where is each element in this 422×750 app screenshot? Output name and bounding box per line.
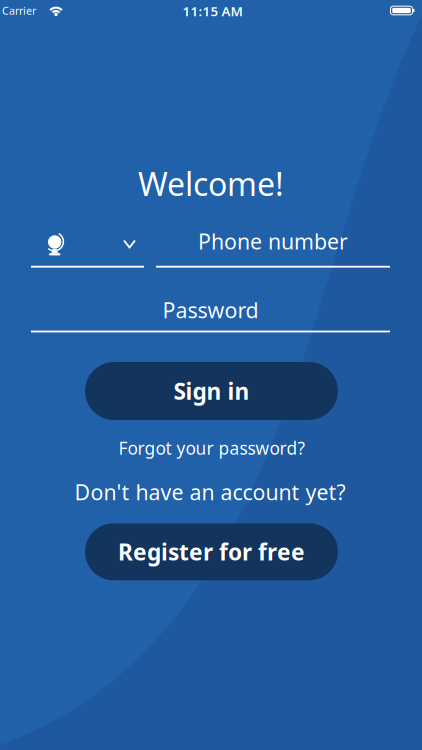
button[interactable]: Register for free [85,523,338,580]
staticText: Forgot your password? [118,436,305,459]
staticText: Password [162,296,258,324]
button[interactable]: Forgot your password? [118,436,305,459]
staticText: Phone number [198,227,348,255]
staticText: Carrier [2,4,36,18]
staticText: 11:15 AM [182,2,242,20]
staticText: Register for free [118,537,305,567]
staticText: Sign in [173,376,249,406]
staticText: Welcome! [138,162,284,205]
staticText: Don't have an account yet? [74,478,345,506]
button[interactable]: Phone number [156,215,390,267]
button[interactable]: Password [31,283,390,335]
button[interactable]: Select country code [31,215,144,267]
button[interactable]: Sign in [85,362,338,420]
